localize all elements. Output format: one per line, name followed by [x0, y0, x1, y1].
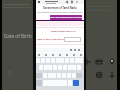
staticText: Registration No [51, 29, 70, 32]
button[interactable]: Location [107, 57, 116, 66]
button[interactable]: Close [37, 0, 41, 4]
button[interactable]: Key [73, 80, 79, 86]
button[interactable]: More options [75, 0, 79, 4]
button[interactable]: SSLC EXAMINATION MARCH [50, 15, 82, 20]
staticText: 123456 [68, 29, 77, 32]
button[interactable]: Date of birth input [64, 37, 81, 42]
button[interactable]: Apps [7, 70, 13, 76]
staticText: Date of Birth (DD/MM/YYYY) [37, 38, 70, 41]
staticText: SSLC EXAMINATION MARCH [50, 15, 82, 18]
button[interactable]: Wallet [94, 57, 103, 66]
button[interactable]: Share [65, 0, 69, 4]
button[interactable]: Back [83, 57, 92, 66]
button[interactable]: Bookmark [70, 0, 74, 4]
button[interactable]: Download [107, 70, 116, 79]
staticText: Directorate of Government Examinations [37, 10, 83, 13]
staticText: Date of Birth [4, 33, 32, 39]
staticText: Government of Tamil Nadu [43, 6, 77, 9]
button[interactable]: Globe [94, 70, 103, 79]
